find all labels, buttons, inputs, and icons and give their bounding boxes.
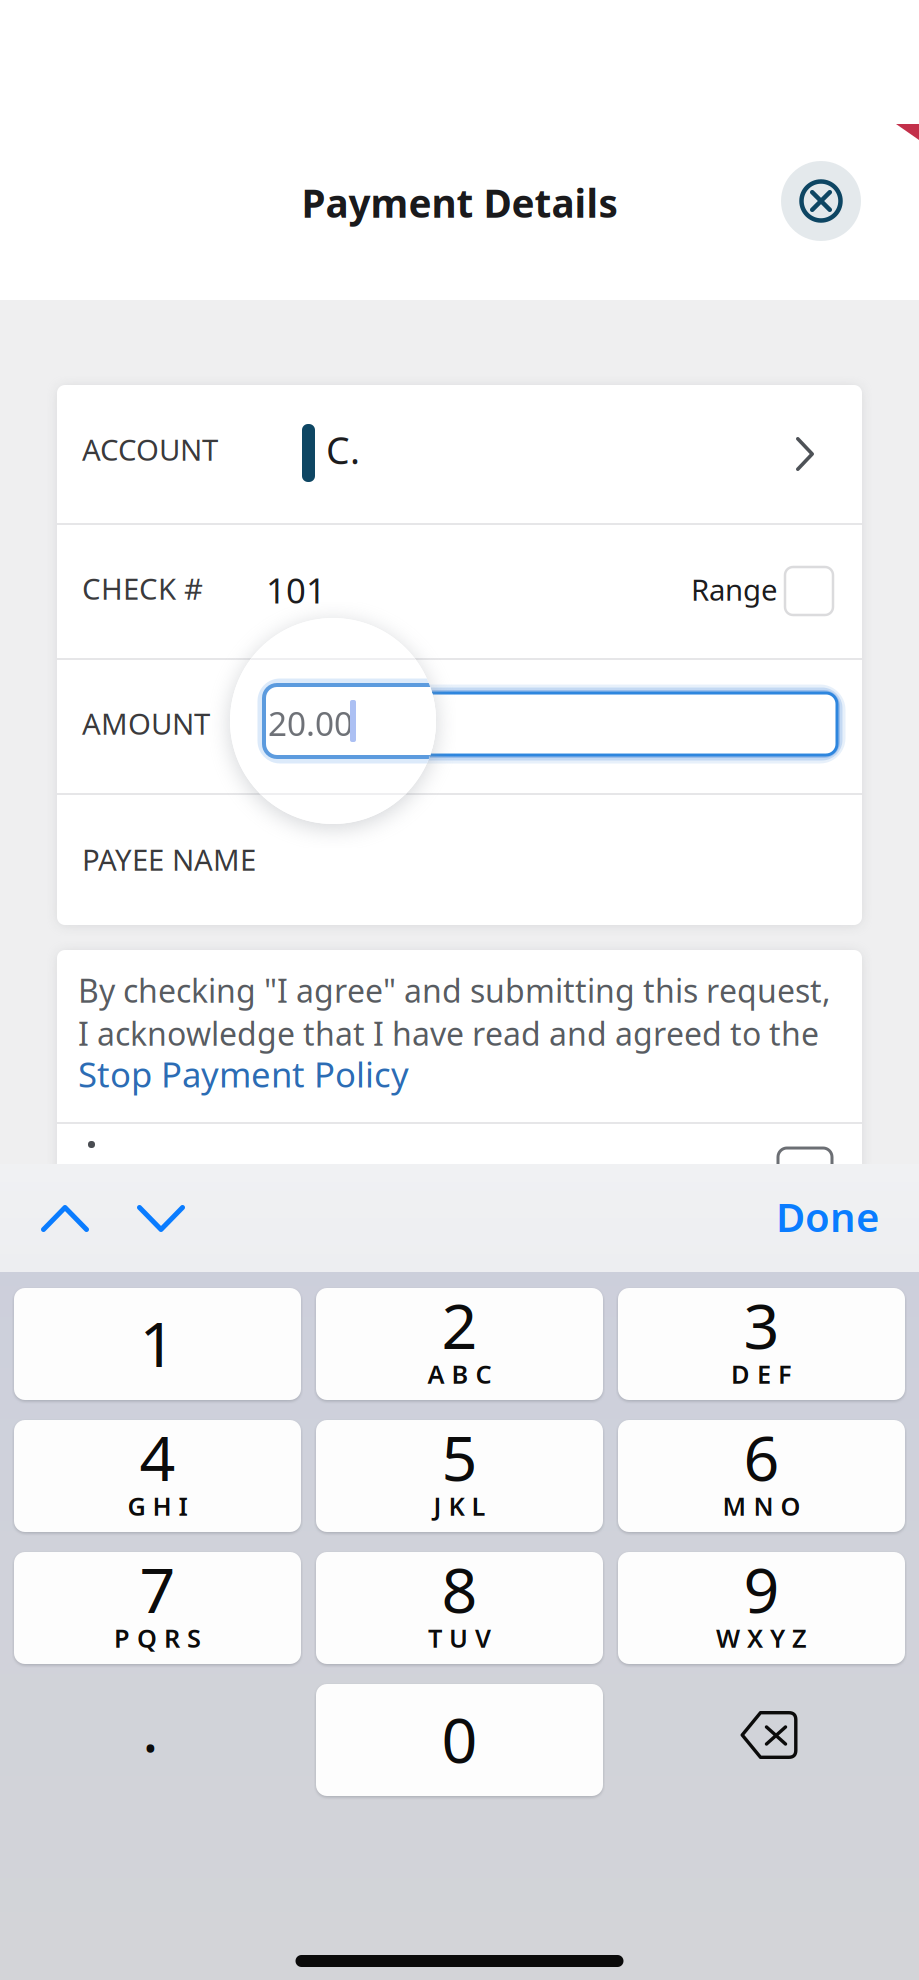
staticText: ACCOUNT — [82, 430, 218, 469]
staticText: 1 — [139, 1301, 175, 1384]
staticText: CHECK # — [82, 569, 203, 608]
button[interactable]: 8 — [316, 1552, 603, 1664]
staticText: 8 — [441, 1547, 477, 1630]
staticText: AMOUNT — [82, 704, 210, 743]
button[interactable]: 0 — [316, 1684, 603, 1796]
staticText: A B C — [427, 1357, 491, 1391]
button[interactable]: 2 — [316, 1288, 603, 1400]
staticText: 20.00 — [273, 697, 358, 741]
staticText: 101 — [266, 567, 326, 613]
staticText: Range — [691, 570, 778, 609]
staticText: 4 — [139, 1415, 175, 1498]
staticText: W X Y Z — [716, 1621, 807, 1655]
button[interactable]: Range — [785, 567, 833, 615]
staticText: 0 — [441, 1697, 477, 1780]
staticText: Done — [776, 1190, 879, 1243]
button[interactable]: 5 — [316, 1420, 603, 1532]
staticText: G H I — [127, 1489, 187, 1523]
staticText: 2 — [441, 1283, 477, 1366]
staticText: . — [142, 1686, 159, 1770]
staticText: T U V — [428, 1621, 491, 1655]
staticText: Stop Payment Policy — [78, 1051, 409, 1097]
button[interactable]: Delete — [625, 1679, 912, 1791]
staticText: J K L — [433, 1489, 485, 1523]
button[interactable]: 9 — [618, 1552, 905, 1664]
staticText: 3 — [743, 1283, 779, 1366]
staticText: 9 — [743, 1547, 779, 1630]
staticText: D E F — [731, 1357, 792, 1391]
button[interactable]: Next field — [137, 1205, 185, 1232]
staticText: 6 — [743, 1415, 779, 1498]
staticText: PAYEE NAME — [82, 840, 256, 879]
staticText: By checking "I agree" and submitting thi… — [78, 969, 831, 1011]
button[interactable]: Close — [781, 161, 861, 241]
button[interactable]: 1 — [14, 1288, 301, 1400]
button[interactable]: 7 — [14, 1552, 301, 1664]
staticText: 7 — [139, 1547, 175, 1630]
button[interactable]: Previous field — [41, 1205, 89, 1232]
staticText: C. — [326, 425, 360, 475]
button[interactable]: Stop Payment Policy — [78, 1051, 409, 1097]
staticText: Payment Details — [301, 177, 617, 228]
button[interactable]: Done — [699, 1190, 879, 1243]
staticText: 20.00 — [268, 701, 353, 745]
button[interactable]: 3 — [618, 1288, 905, 1400]
button[interactable]: 6 — [618, 1420, 905, 1532]
staticText: I acknowledge that I have read and agree… — [78, 1012, 819, 1054]
staticText: 5 — [441, 1415, 477, 1498]
button[interactable]: 4 — [14, 1420, 301, 1532]
staticText: P Q R S — [114, 1621, 201, 1655]
button[interactable]: Decimal point — [7, 1672, 294, 1784]
staticText: M N O — [722, 1489, 800, 1523]
